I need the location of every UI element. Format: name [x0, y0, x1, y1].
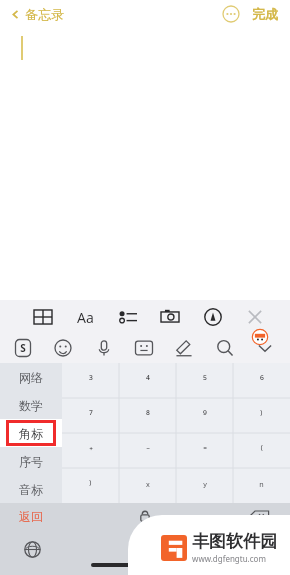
- button[interactable]: ³: [62, 363, 119, 398]
- staticText: 网络: [19, 370, 43, 385]
- staticText: ʸ: [203, 478, 207, 493]
- staticText: S: [20, 341, 26, 355]
- button[interactable]: ⁼: [176, 433, 233, 468]
- staticText: ⁴: [146, 373, 150, 388]
- button[interactable]: ⁾: [233, 398, 290, 433]
- button[interactable]: Lock: [62, 503, 228, 529]
- button[interactable]: 网络: [0, 363, 62, 391]
- staticText: www.dgfengtu.com: [192, 553, 266, 564]
- button[interactable]: 完成: [250, 3, 280, 25]
- staticText: ⁹: [203, 408, 207, 423]
- staticText: ³: [89, 373, 93, 388]
- button[interactable]: Voice input: [91, 335, 117, 361]
- staticText: ⁷: [89, 408, 93, 423]
- staticText: ⁶: [260, 373, 264, 388]
- button[interactable]: Camera: [157, 304, 183, 330]
- button[interactable]: Emoji: [50, 335, 76, 361]
- button[interactable]: ˣ: [119, 468, 176, 503]
- staticText: ⁽: [260, 443, 263, 458]
- staticText: 备忘录: [25, 6, 64, 22]
- staticText: ˣ: [146, 478, 150, 493]
- button[interactable]: 备忘录: [8, 3, 66, 25]
- staticText: ⁵: [203, 373, 207, 388]
- staticText: ⁼: [203, 443, 207, 458]
- button[interactable]: More options: [222, 5, 240, 23]
- button[interactable]: Collapse keyboard: [252, 335, 278, 361]
- button[interactable]: ⁿ: [233, 468, 290, 503]
- button[interactable]: 音标: [0, 475, 62, 503]
- staticText: 返回: [19, 509, 43, 524]
- button[interactable]: ⁸: [119, 398, 176, 433]
- button[interactable]: 数学: [0, 391, 62, 419]
- button[interactable]: Handwriting: [171, 335, 197, 361]
- staticText: ⁿ: [259, 478, 264, 493]
- staticText: ⁸: [146, 408, 150, 423]
- staticText: Aa: [77, 308, 94, 327]
- staticText: 数学: [19, 398, 43, 413]
- staticText: ⁻: [146, 443, 150, 458]
- button[interactable]: Close: [242, 304, 268, 330]
- button[interactable]: ⁴: [119, 363, 176, 398]
- button[interactable]: Sogou input: [10, 335, 36, 361]
- button[interactable]: ⁺: [62, 433, 119, 468]
- staticText: 序号: [19, 454, 43, 469]
- staticText: ⁾: [260, 408, 263, 423]
- button[interactable]: Markup: [200, 304, 226, 330]
- staticText: 丰图软件园: [192, 531, 277, 552]
- button[interactable]: ⁷: [62, 398, 119, 433]
- button[interactable]: ⁹: [176, 398, 233, 433]
- button[interactable]: Search: [212, 335, 238, 361]
- button[interactable]: ⁻: [119, 433, 176, 468]
- staticText: ⁺: [89, 443, 93, 458]
- button[interactable]: Backspace: [228, 503, 290, 529]
- button[interactable]: ⁾: [62, 468, 119, 503]
- button[interactable]: Checklist: [115, 304, 141, 330]
- staticText: 完成: [252, 6, 278, 22]
- button[interactable]: Sticker: [131, 335, 157, 361]
- button[interactable]: ʸ: [176, 468, 233, 503]
- button[interactable]: 角标: [0, 419, 62, 447]
- button[interactable]: Text format: [72, 304, 98, 330]
- staticText: 音标: [19, 482, 43, 497]
- button[interactable]: 返回: [0, 503, 62, 529]
- button[interactable]: 序号: [0, 447, 62, 475]
- button[interactable]: Switch language: [22, 539, 42, 559]
- button[interactable]: ⁵: [176, 363, 233, 398]
- staticText: ⁾: [89, 478, 92, 493]
- staticText: 角标: [19, 426, 43, 441]
- button[interactable]: ⁶: [233, 363, 290, 398]
- button[interactable]: ⁽: [233, 433, 290, 468]
- button[interactable]: Insert table: [30, 304, 56, 330]
